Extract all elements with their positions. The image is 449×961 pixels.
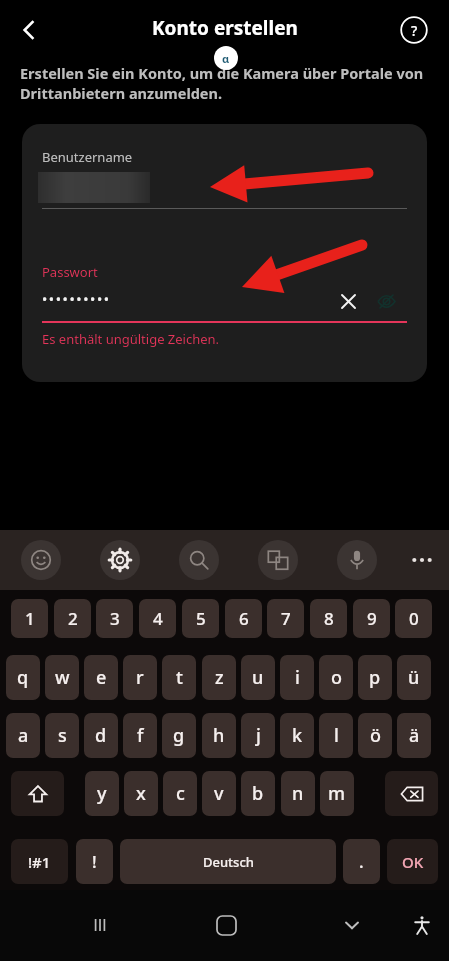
staticText: t: [176, 665, 183, 690]
staticText: c: [176, 781, 185, 806]
button[interactable]: Löschen: [332, 285, 364, 317]
button[interactable]: Hilfe: [394, 10, 434, 50]
staticText: Es enthält ungültige Zeichen.: [42, 330, 220, 348]
staticText: s: [58, 723, 67, 748]
button[interactable]: ä: [397, 713, 431, 758]
staticText: .: [359, 850, 364, 873]
button[interactable]: l: [319, 713, 353, 758]
staticText: ••••••••••: [42, 290, 111, 309]
staticText: 0: [409, 607, 419, 630]
staticText: 3: [110, 607, 120, 630]
button[interactable]: OK: [387, 839, 438, 884]
button[interactable]: b: [241, 771, 275, 816]
staticText: Deutsch: [203, 853, 254, 871]
staticText: 8: [324, 607, 334, 630]
button[interactable]: Übersetzen: [258, 540, 298, 580]
button[interactable]: 1: [11, 599, 48, 638]
staticText: 1: [25, 607, 35, 630]
button[interactable]: !#1: [11, 839, 68, 884]
button[interactable]: i: [280, 655, 314, 700]
button[interactable]: Umschalttaste: [11, 771, 64, 816]
button[interactable]: u: [241, 655, 275, 700]
staticText: Benutzername: [42, 148, 133, 166]
button[interactable]: 2: [54, 599, 91, 638]
button[interactable]: 5: [182, 599, 219, 638]
button[interactable]: c: [163, 771, 197, 816]
staticText: 6: [239, 607, 249, 630]
button[interactable]: t: [162, 655, 196, 700]
button[interactable]: y: [85, 771, 119, 816]
button[interactable]: v: [202, 771, 236, 816]
staticText: f: [137, 723, 144, 748]
staticText: 5: [196, 607, 206, 630]
button[interactable]: 3: [96, 599, 133, 638]
button[interactable]: Passwort anzeigen: [370, 285, 402, 317]
button[interactable]: f: [123, 713, 157, 758]
button[interactable]: 7: [267, 599, 304, 638]
staticText: ö: [370, 723, 381, 748]
staticText: g: [173, 723, 185, 748]
button[interactable]: Startbildschirm: [204, 903, 248, 947]
staticText: ?: [411, 21, 418, 40]
staticText: l: [334, 723, 339, 748]
button[interactable]: e: [84, 655, 118, 700]
button[interactable]: s: [45, 713, 79, 758]
staticText: z: [215, 665, 224, 690]
staticText: 4: [153, 607, 163, 630]
button[interactable]: z: [202, 655, 236, 700]
button[interactable]: Löschtaste: [385, 771, 438, 816]
button[interactable]: m: [320, 771, 354, 816]
button[interactable]: o: [319, 655, 353, 700]
button[interactable]: Deutsch: [120, 839, 336, 884]
button[interactable]: j: [241, 713, 275, 758]
staticText: i: [295, 665, 300, 690]
button[interactable]: ö: [358, 713, 392, 758]
button[interactable]: h: [202, 713, 236, 758]
button[interactable]: g: [162, 713, 196, 758]
staticText: h: [213, 723, 225, 748]
staticText: Passwort: [42, 263, 98, 281]
button[interactable]: r: [123, 655, 157, 700]
button[interactable]: 8: [310, 599, 347, 638]
staticText: r: [136, 665, 144, 690]
button[interactable]: 9: [353, 599, 390, 638]
button[interactable]: Bedienungshilfen: [400, 903, 444, 947]
button[interactable]: 4: [139, 599, 176, 638]
button[interactable]: w: [45, 655, 79, 700]
button[interactable]: n: [281, 771, 315, 816]
button[interactable]: !: [76, 839, 113, 884]
staticText: !#1: [28, 852, 51, 872]
button[interactable]: d: [84, 713, 118, 758]
staticText: k: [292, 723, 303, 748]
button[interactable]: q: [6, 655, 40, 700]
staticText: u: [252, 665, 264, 690]
button[interactable]: a: [6, 713, 40, 758]
button[interactable]: Letzte Apps: [78, 903, 122, 947]
button[interactable]: 6: [225, 599, 262, 638]
staticText: ä: [409, 723, 420, 748]
button[interactable]: x: [124, 771, 158, 816]
button[interactable]: 0: [395, 599, 432, 638]
button[interactable]: Emoji: [21, 540, 61, 580]
staticText: ü: [408, 665, 420, 690]
staticText: n: [292, 781, 304, 806]
staticText: q: [17, 665, 29, 690]
button[interactable]: ü: [397, 655, 431, 700]
button[interactable]: k: [280, 713, 314, 758]
button[interactable]: Spracheingabe: [337, 540, 377, 580]
staticText: p: [369, 665, 381, 690]
staticText: y: [97, 781, 107, 806]
staticText: d: [95, 723, 107, 748]
button[interactable]: Suchen: [179, 540, 219, 580]
staticText: Erstellen Sie ein Konto, um die Kamera ü…: [20, 63, 432, 103]
button[interactable]: p: [358, 655, 392, 700]
button[interactable]: Einstellungen: [100, 540, 140, 580]
button[interactable]: Mehr: [402, 540, 442, 580]
button[interactable]: Zurück: [8, 9, 50, 51]
staticText: 2: [68, 607, 78, 630]
button[interactable]: Tastatur ausblenden: [330, 903, 374, 947]
button[interactable]: .: [343, 839, 380, 884]
staticText: 7: [281, 607, 291, 630]
staticText: a: [18, 723, 29, 748]
staticText: !: [92, 850, 97, 873]
